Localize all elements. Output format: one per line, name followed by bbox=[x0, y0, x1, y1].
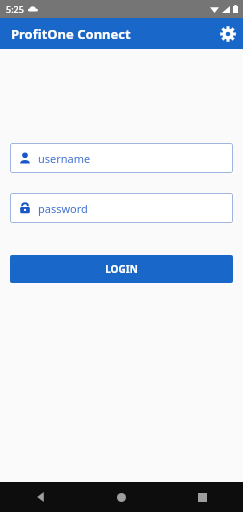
button[interactable]: Settings bbox=[212, 18, 243, 49]
staticText: ProfitOne Connect bbox=[11, 25, 131, 43]
button[interactable]: username bbox=[10, 143, 233, 173]
staticText: 5:25 bbox=[6, 3, 24, 15]
staticText: LOGIN bbox=[105, 262, 138, 276]
button[interactable]: LOGIN bbox=[10, 255, 233, 283]
button[interactable]: Home bbox=[81, 482, 162, 512]
button[interactable]: Back bbox=[0, 482, 81, 512]
button[interactable]: Recents bbox=[162, 482, 243, 512]
staticText: username bbox=[38, 151, 91, 166]
button[interactable]: password bbox=[10, 193, 233, 223]
staticText: password bbox=[38, 201, 88, 216]
